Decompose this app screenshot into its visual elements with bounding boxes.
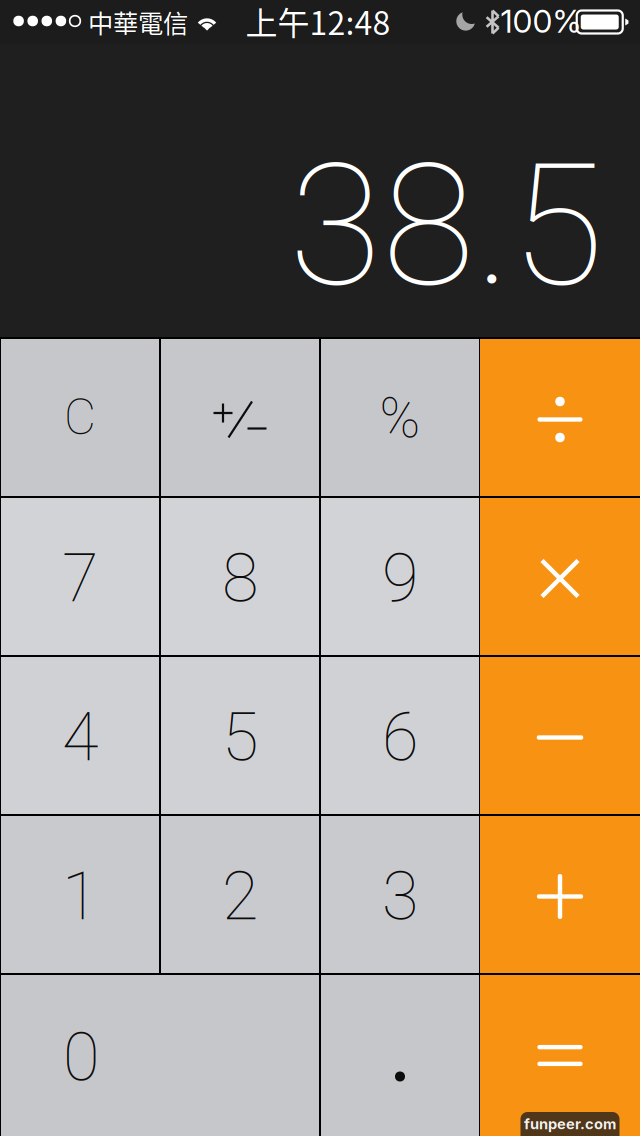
staticText: 0 (63, 1018, 99, 1096)
button[interactable]: 4 (1, 657, 159, 814)
staticText: 100% (500, 2, 581, 40)
staticText: 8 (222, 539, 258, 617)
staticText: 9 (382, 539, 418, 617)
staticText: 3 (382, 857, 418, 935)
button[interactable]: Subtract (480, 657, 640, 814)
button[interactable]: Add (480, 816, 640, 973)
button[interactable]: Divide (480, 339, 640, 496)
button[interactable]: 6 (321, 657, 479, 814)
staticText: 中華電信 (88, 4, 188, 40)
button[interactable]: 1 (1, 816, 159, 973)
staticText: 2 (222, 857, 258, 935)
staticText: % (379, 386, 420, 451)
button[interactable]: Plus minus (161, 339, 319, 496)
staticText: 上午12:48 (245, 0, 390, 44)
button[interactable]: 5 (161, 657, 319, 814)
button[interactable]: Equals (480, 975, 640, 1136)
button[interactable]: 9 (321, 498, 479, 655)
button[interactable]: 2 (161, 816, 319, 973)
button[interactable]: Multiply (480, 498, 640, 655)
staticText: C (64, 389, 96, 446)
staticText: 6 (382, 698, 418, 776)
staticText: 5 (222, 698, 258, 776)
button[interactable]: 0 (1, 975, 319, 1136)
button[interactable]: 7 (1, 498, 159, 655)
button[interactable]: 8 (161, 498, 319, 655)
button[interactable]: C (1, 339, 159, 496)
button[interactable]: 3 (321, 816, 479, 973)
staticText: funpeer.com (524, 1115, 616, 1133)
staticText: 4 (62, 698, 98, 776)
button[interactable]: % (321, 339, 479, 496)
staticText: 1 (62, 857, 98, 935)
staticText: 38.5 (289, 126, 604, 325)
button[interactable]: Decimal point (321, 975, 479, 1136)
staticText: 7 (62, 539, 98, 617)
